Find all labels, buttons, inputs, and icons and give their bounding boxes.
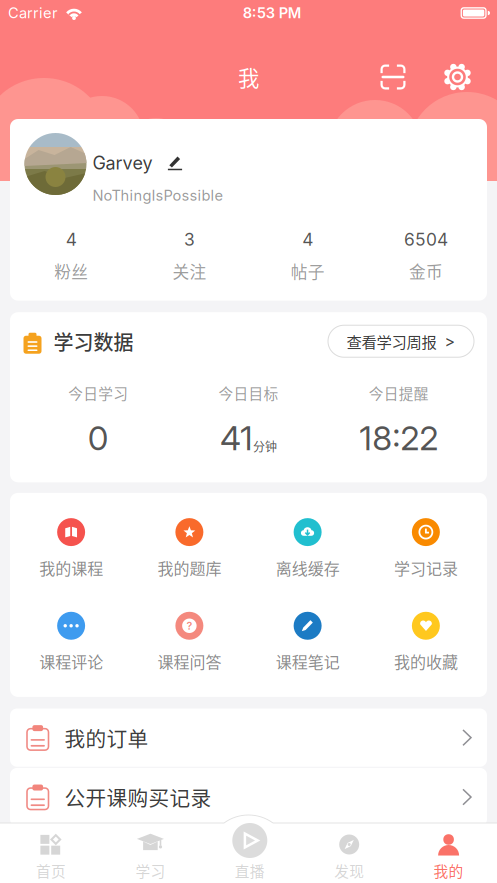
staticText: 发现 — [334, 860, 364, 881]
button[interactable]: 4 — [12, 229, 130, 283]
button[interactable]: 我的收藏 — [367, 612, 485, 673]
button[interactable]: 查看学习周报 — [328, 325, 474, 357]
button[interactable]: 公开课购买记录 — [10, 768, 487, 826]
staticText: 学习记录 — [394, 556, 458, 579]
button[interactable]: 发现 — [299, 823, 399, 881]
staticText: 离线缓存 — [276, 556, 340, 579]
staticText: 查看学习周报 — [346, 330, 436, 352]
staticText: 帖子 — [291, 259, 325, 283]
staticText: 学习 — [135, 860, 165, 881]
button[interactable]: Settings — [443, 62, 472, 91]
staticText: 今日目标 — [218, 382, 278, 403]
staticText: 8:53 PM — [243, 4, 302, 22]
staticText: 课程评论 — [39, 650, 103, 673]
staticText: ? — [186, 619, 192, 632]
button[interactable]: 4 — [248, 229, 367, 283]
staticText: 我的题库 — [157, 556, 221, 579]
staticText: 金币 — [409, 259, 443, 283]
staticText: 分钟 — [253, 437, 277, 455]
staticText: 课程笔记 — [276, 650, 340, 673]
staticText: 我的收藏 — [394, 650, 458, 673]
button[interactable]: 我的课程 — [12, 518, 130, 579]
staticText: 我的 — [434, 860, 464, 881]
button[interactable]: 首页 — [1, 823, 101, 881]
button[interactable]: 直播 — [200, 823, 299, 881]
staticText: 今日提醒 — [369, 382, 429, 403]
staticText: 41 — [220, 418, 253, 458]
staticText: 粉丝 — [54, 259, 88, 283]
staticText: > — [444, 332, 455, 351]
staticText: 关注 — [172, 259, 206, 283]
button[interactable]: 3 — [130, 229, 248, 283]
staticText: Carrier — [8, 4, 58, 22]
button[interactable]: ? — [130, 612, 248, 673]
button[interactable]: 离线缓存 — [248, 518, 367, 579]
staticText: 0 — [88, 418, 109, 458]
staticText: 首页 — [36, 860, 66, 881]
staticText: 我的订单 — [64, 723, 148, 753]
button[interactable]: 学习记录 — [367, 518, 485, 579]
staticText: 4 — [66, 229, 77, 250]
button[interactable]: 课程笔记 — [248, 612, 367, 673]
staticText: 3 — [184, 229, 195, 250]
staticText: 6504 — [404, 229, 448, 250]
button[interactable]: Scan QR code — [380, 64, 406, 90]
staticText: 学习数据 — [53, 327, 133, 356]
button[interactable]: 我的订单 — [10, 708, 487, 767]
staticText: 课程问答 — [157, 650, 221, 673]
staticText: 4 — [302, 229, 313, 250]
button[interactable]: 我的题库 — [130, 518, 248, 579]
staticText: NoThingIsPossible — [92, 187, 223, 204]
button[interactable]: 6504 — [367, 229, 485, 283]
staticText: 我 — [238, 62, 259, 92]
button[interactable]: 学习 — [101, 823, 200, 881]
staticText: 我的课程 — [39, 556, 103, 579]
staticText: 公开课购买记录 — [64, 782, 211, 812]
staticText: 直播 — [235, 860, 265, 881]
button[interactable]: 我的 — [399, 823, 497, 881]
staticText: Garvey — [92, 152, 152, 174]
button[interactable]: Edit profile — [167, 155, 182, 171]
button[interactable]: 课程评论 — [12, 612, 130, 673]
staticText: 18:22 — [359, 418, 438, 458]
staticText: 今日学习 — [68, 382, 128, 403]
